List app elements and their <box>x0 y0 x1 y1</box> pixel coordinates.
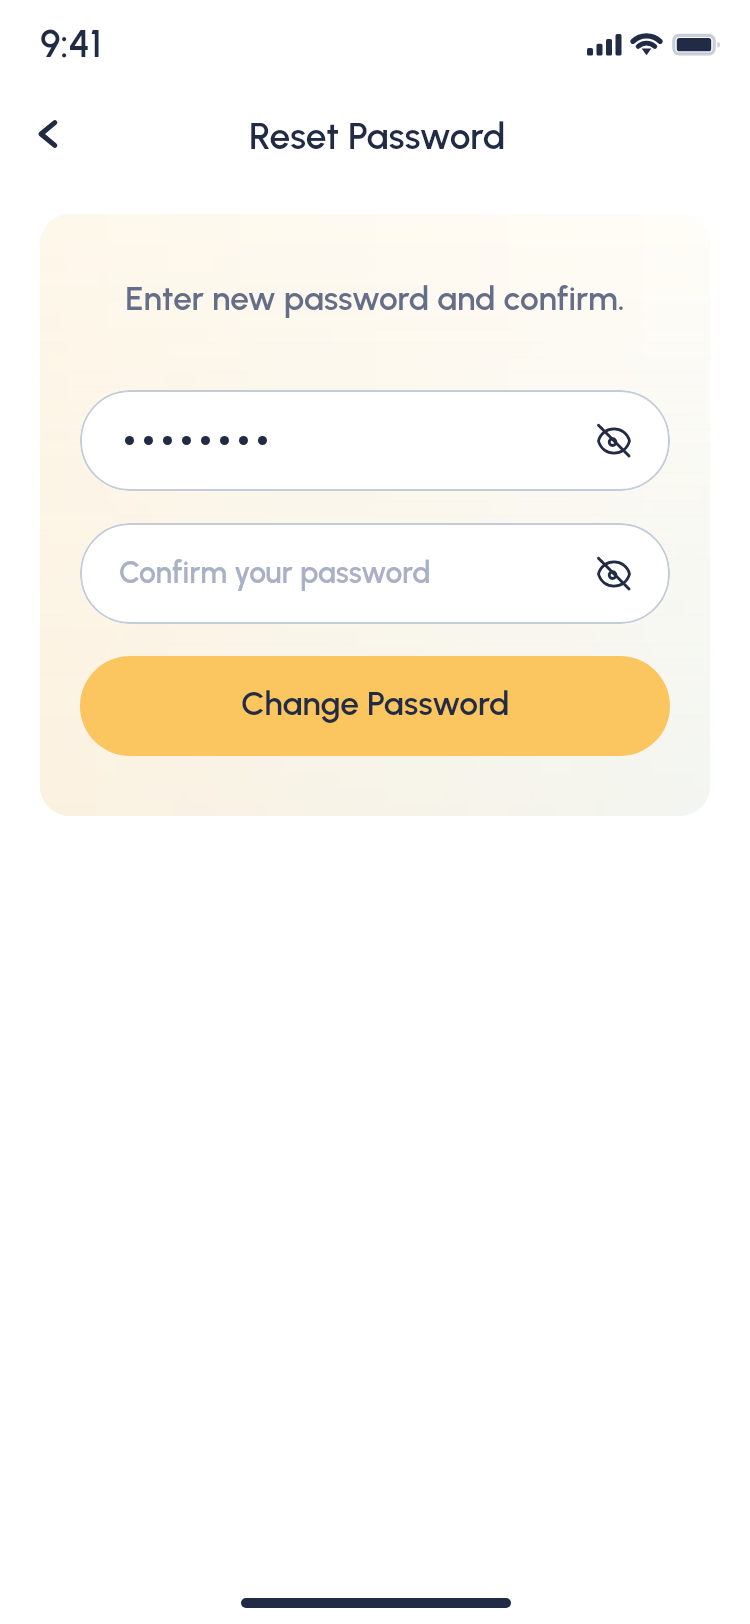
staticText: 9:41 <box>40 21 102 67</box>
button[interactable]: Show password <box>80 390 670 491</box>
button[interactable]: Show password <box>588 415 640 467</box>
button[interactable]: Change Password <box>80 656 670 756</box>
button[interactable]: Show password <box>588 548 640 600</box>
staticText: Change Password <box>241 683 510 723</box>
button[interactable]: Confirm your password <box>80 523 670 624</box>
staticText: Enter new password and confirm. <box>80 278 670 318</box>
button[interactable]: Back <box>18 102 82 166</box>
staticText: Reset Password <box>249 114 506 158</box>
staticText: Confirm your password <box>119 554 588 590</box>
